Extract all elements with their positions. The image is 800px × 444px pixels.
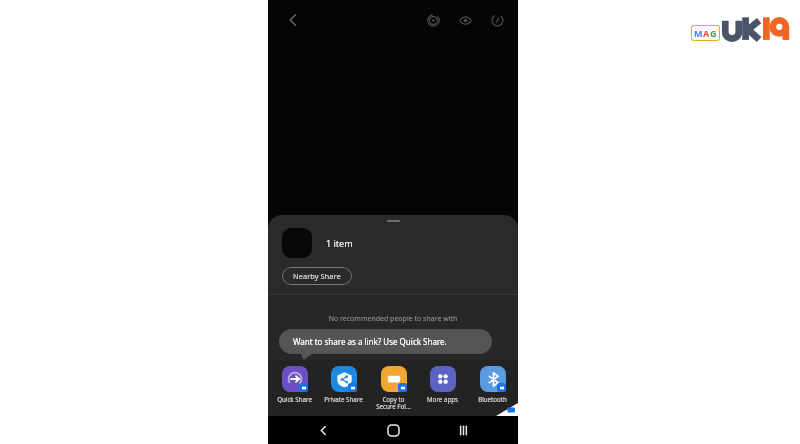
staticText: Quick Share: [277, 395, 312, 403]
staticText: M: [694, 27, 703, 39]
button[interactable]: More apps: [419, 366, 466, 403]
staticText: Copy to Secure Fol...: [376, 395, 411, 411]
button[interactable]: Nearby Share: [282, 267, 352, 285]
staticText: Want to share as a link? Use Quick Share…: [293, 336, 447, 347]
button[interactable]: Home: [378, 416, 408, 444]
button[interactable]: Motion photo: [422, 9, 444, 31]
staticText: Private Share: [324, 395, 363, 403]
staticText: No recommended people to share with: [268, 314, 518, 324]
button[interactable]: Back: [308, 416, 338, 444]
button[interactable]: Recent apps: [448, 416, 478, 444]
staticText: Bluetooth: [478, 395, 507, 403]
button[interactable]: Copy to Secure Fol...: [370, 366, 417, 411]
staticText: A: [703, 27, 710, 39]
staticText: Nearby Share: [293, 271, 341, 281]
button[interactable]: Quick Share: [271, 366, 318, 403]
button[interactable]: View: [454, 9, 476, 31]
staticText: G: [710, 27, 717, 39]
button[interactable]: Private Share: [320, 366, 367, 403]
button[interactable]: Bluetooth: [469, 366, 516, 403]
staticText: 1 item: [326, 237, 353, 249]
button[interactable]: Back: [280, 7, 306, 33]
button[interactable]: Rotate: [486, 9, 508, 31]
button[interactable]: Want to share as a link? Use Quick Share…: [279, 329, 492, 354]
staticText: More apps: [427, 395, 458, 403]
